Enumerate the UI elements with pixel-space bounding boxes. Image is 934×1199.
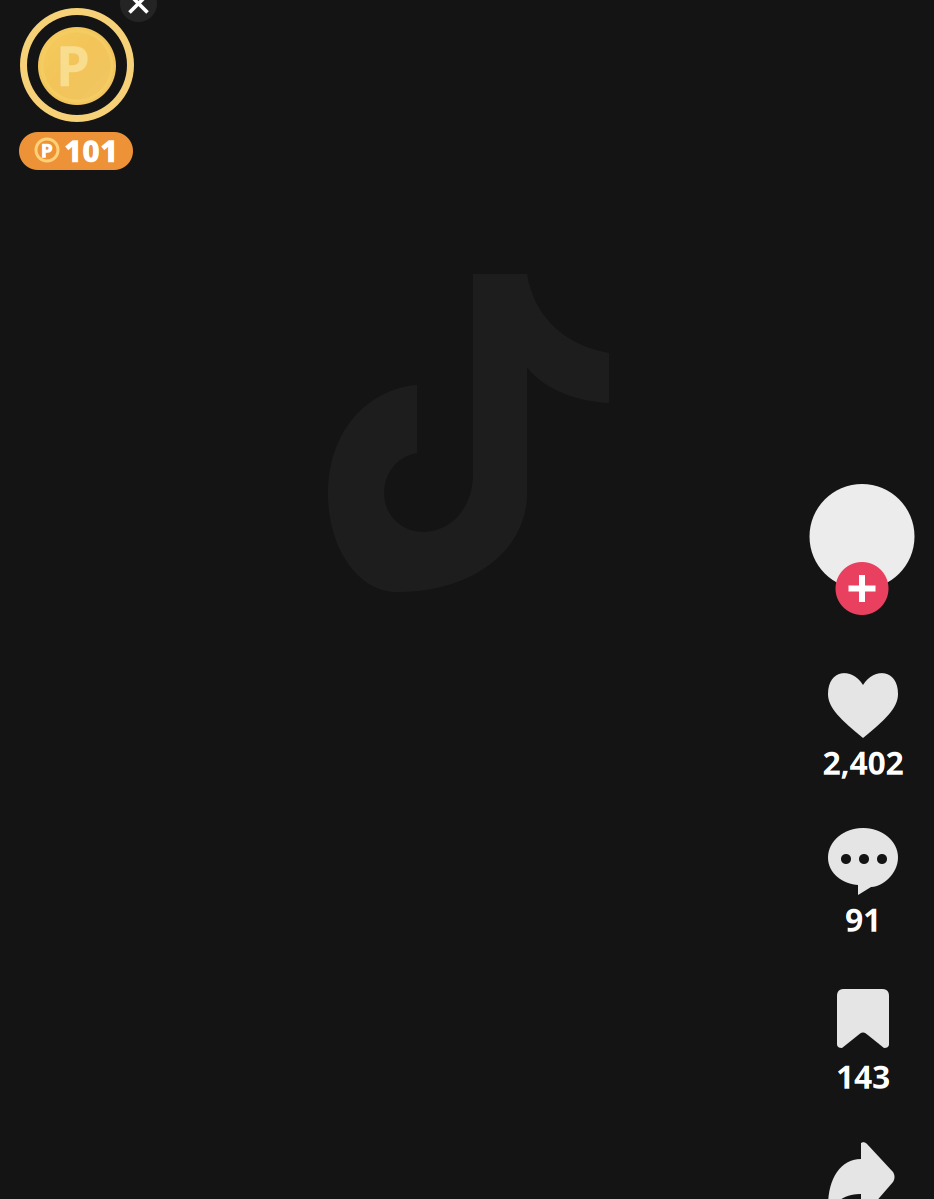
button[interactable]: Follow creator xyxy=(802,484,924,615)
button[interactable]: Save xyxy=(802,989,924,1097)
button[interactable]: Comments xyxy=(802,828,924,940)
staticText: P xyxy=(40,137,53,163)
staticText: 2,402 xyxy=(822,741,903,783)
button[interactable]: Like xyxy=(802,672,924,783)
staticText: P xyxy=(56,29,90,101)
staticText: 91 xyxy=(845,898,881,940)
button[interactable]: Rewards xyxy=(20,8,134,122)
button[interactable]: Close xyxy=(120,0,157,22)
staticText: 101 xyxy=(64,130,118,171)
staticText: 143 xyxy=(836,1055,890,1097)
button[interactable]: Share xyxy=(802,1141,924,1199)
button[interactable]: 101 points xyxy=(19,132,133,170)
